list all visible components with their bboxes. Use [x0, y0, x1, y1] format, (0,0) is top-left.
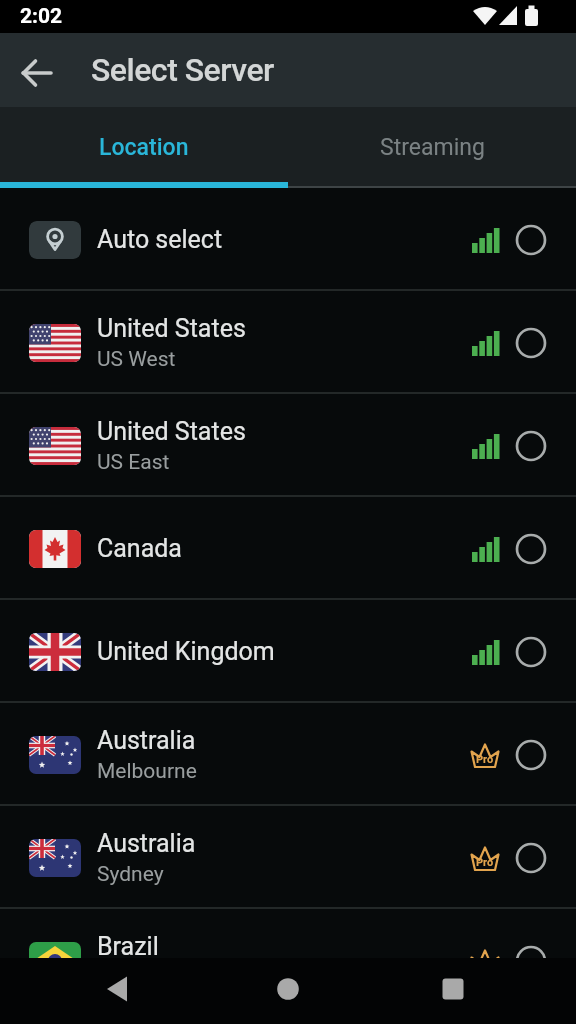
staticText: Sydney: [97, 862, 164, 887]
button[interactable]: Australia: [0, 806, 576, 909]
staticText: Canada: [97, 534, 182, 563]
staticText: US West: [97, 347, 176, 372]
staticText: Location: [99, 134, 189, 161]
staticText: Pro: [476, 753, 494, 766]
staticText: United States: [97, 417, 246, 446]
button[interactable]: Canada: [0, 497, 576, 600]
staticText: United States: [97, 314, 246, 343]
button[interactable]: Australia: [0, 703, 576, 806]
staticText: Streaming: [380, 134, 485, 161]
staticText: Brazil: [97, 932, 159, 958]
staticText: Auto select: [97, 225, 223, 254]
button[interactable]: Streaming: [288, 107, 576, 188]
button[interactable]: Brazil: [0, 909, 576, 958]
staticText: United Kingdom: [97, 637, 275, 666]
button[interactable]: Location: [0, 107, 288, 188]
button[interactable]: Auto select: [0, 188, 576, 291]
staticText: Pro: [476, 856, 494, 869]
staticText: Australia: [97, 829, 196, 858]
staticText: US East: [97, 450, 170, 475]
button[interactable]: [16, 52, 58, 94]
staticText: Melbourne: [97, 759, 197, 784]
button[interactable]: United States: [0, 394, 576, 497]
button[interactable]: United States: [0, 291, 576, 394]
button[interactable]: [93, 965, 141, 1013]
staticText: Australia: [97, 726, 196, 755]
staticText: Select Server: [91, 51, 274, 89]
button[interactable]: [429, 965, 477, 1013]
button[interactable]: [264, 965, 312, 1013]
button[interactable]: United Kingdom: [0, 600, 576, 703]
staticText: 2:02: [20, 4, 63, 29]
